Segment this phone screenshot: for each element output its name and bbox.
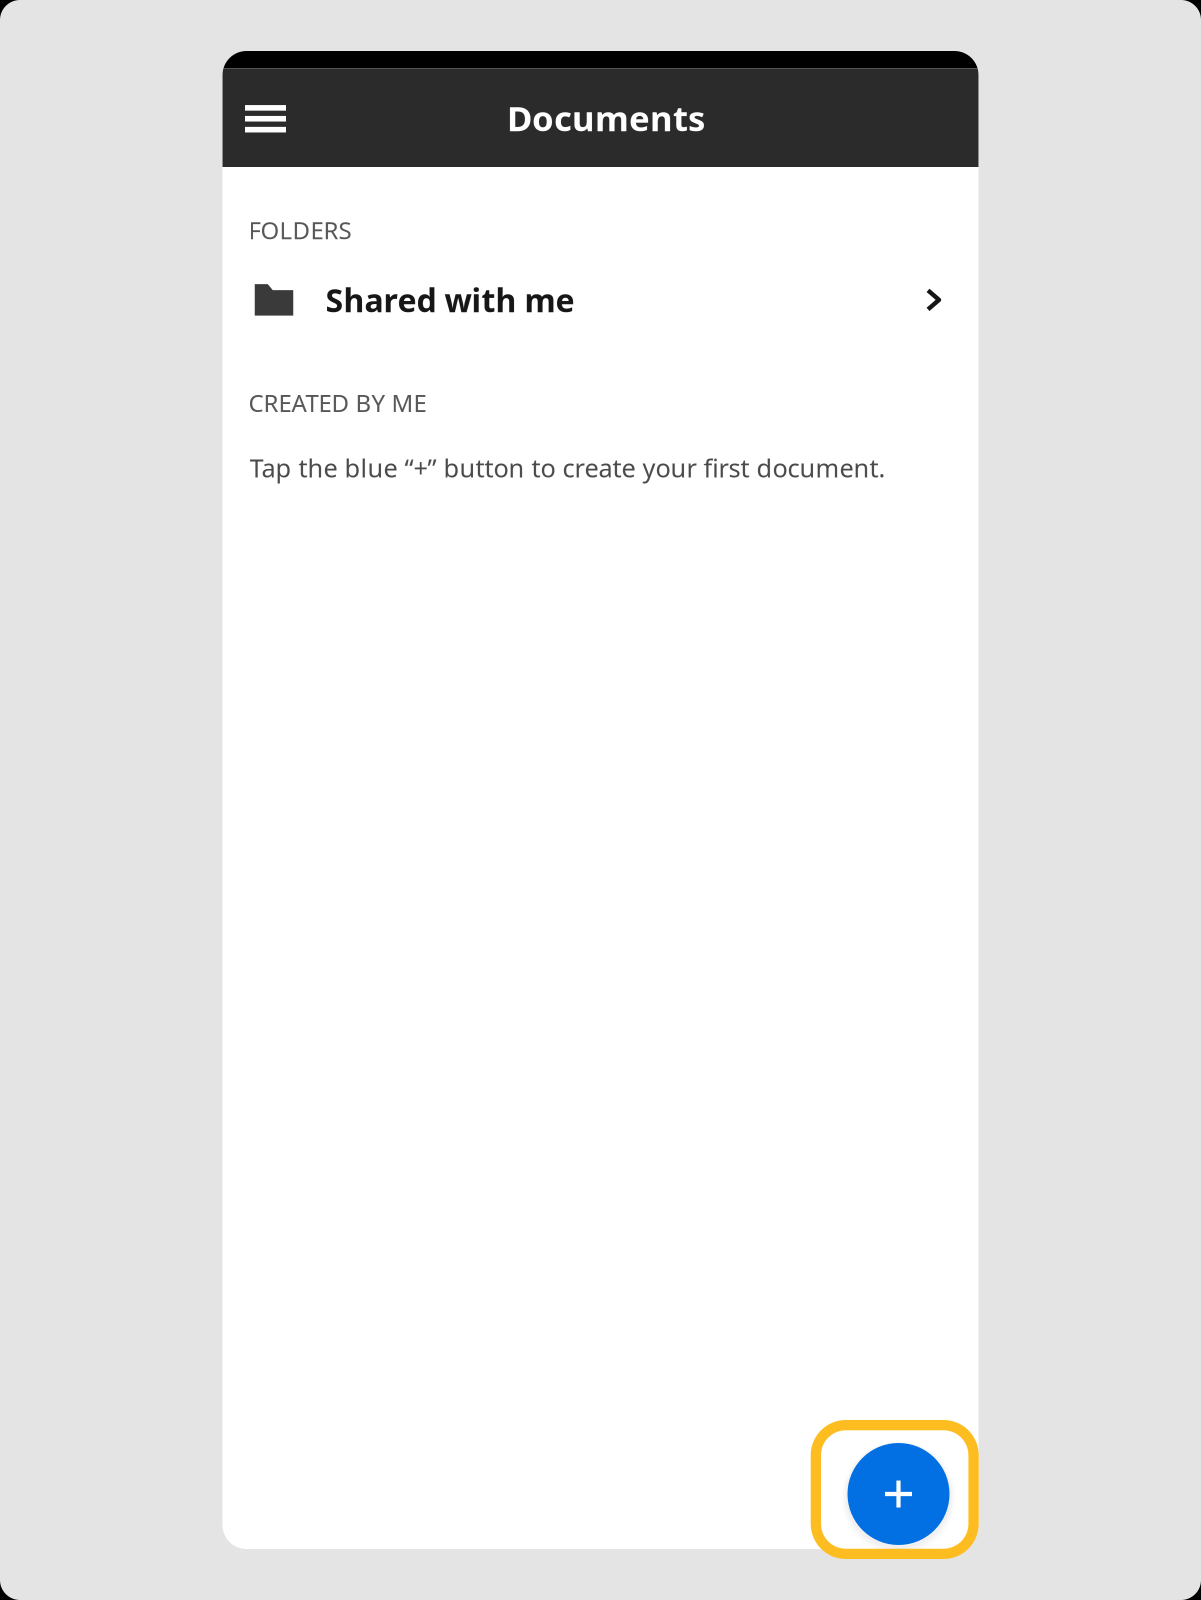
button[interactable]: Menu <box>222 68 308 167</box>
staticText: Documents <box>507 95 705 141</box>
button[interactable]: Create a document <box>847 1443 949 1545</box>
button[interactable]: Shared with me <box>222 268 978 332</box>
staticText: Tap the blue “+” button to create your f… <box>249 451 885 484</box>
staticText: FOLDERS <box>248 214 351 246</box>
staticText: CREATED BY ME <box>248 387 426 419</box>
staticText: Shared with me <box>325 279 574 321</box>
